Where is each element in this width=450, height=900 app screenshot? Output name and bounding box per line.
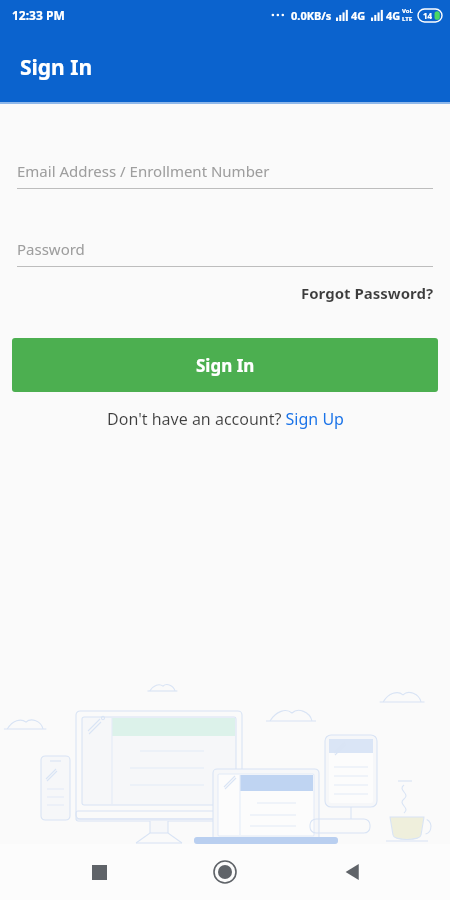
staticText: 0.0KB/s [291, 8, 332, 23]
staticText: 4G [351, 8, 366, 23]
staticText: Email Address / Enrollment Number [17, 161, 270, 181]
staticText: Sign In [20, 53, 93, 82]
button[interactable]: Home [197, 844, 253, 900]
button[interactable]: Don't have an account? Sign Up [0, 404, 450, 434]
staticText: Don't have an account? Sign Up [107, 408, 344, 430]
staticText: Password [17, 239, 85, 259]
button[interactable]: Recents [71, 844, 127, 900]
button[interactable]: Sign In [12, 338, 438, 392]
staticText: 4G [386, 8, 401, 23]
button[interactable]: Forgot Password? [0, 279, 450, 307]
staticText: VoL [402, 7, 413, 15]
staticText: 14 [423, 10, 433, 21]
button[interactable]: Email Address / Enrollment Number [17, 161, 433, 189]
staticText: Forgot Password? [301, 283, 434, 303]
staticText: Sign In [196, 354, 255, 377]
button[interactable]: Password [17, 239, 433, 267]
button[interactable]: Back [324, 844, 380, 900]
staticText: LTE [402, 15, 413, 23]
staticText: 12:33 PM [12, 7, 65, 23]
